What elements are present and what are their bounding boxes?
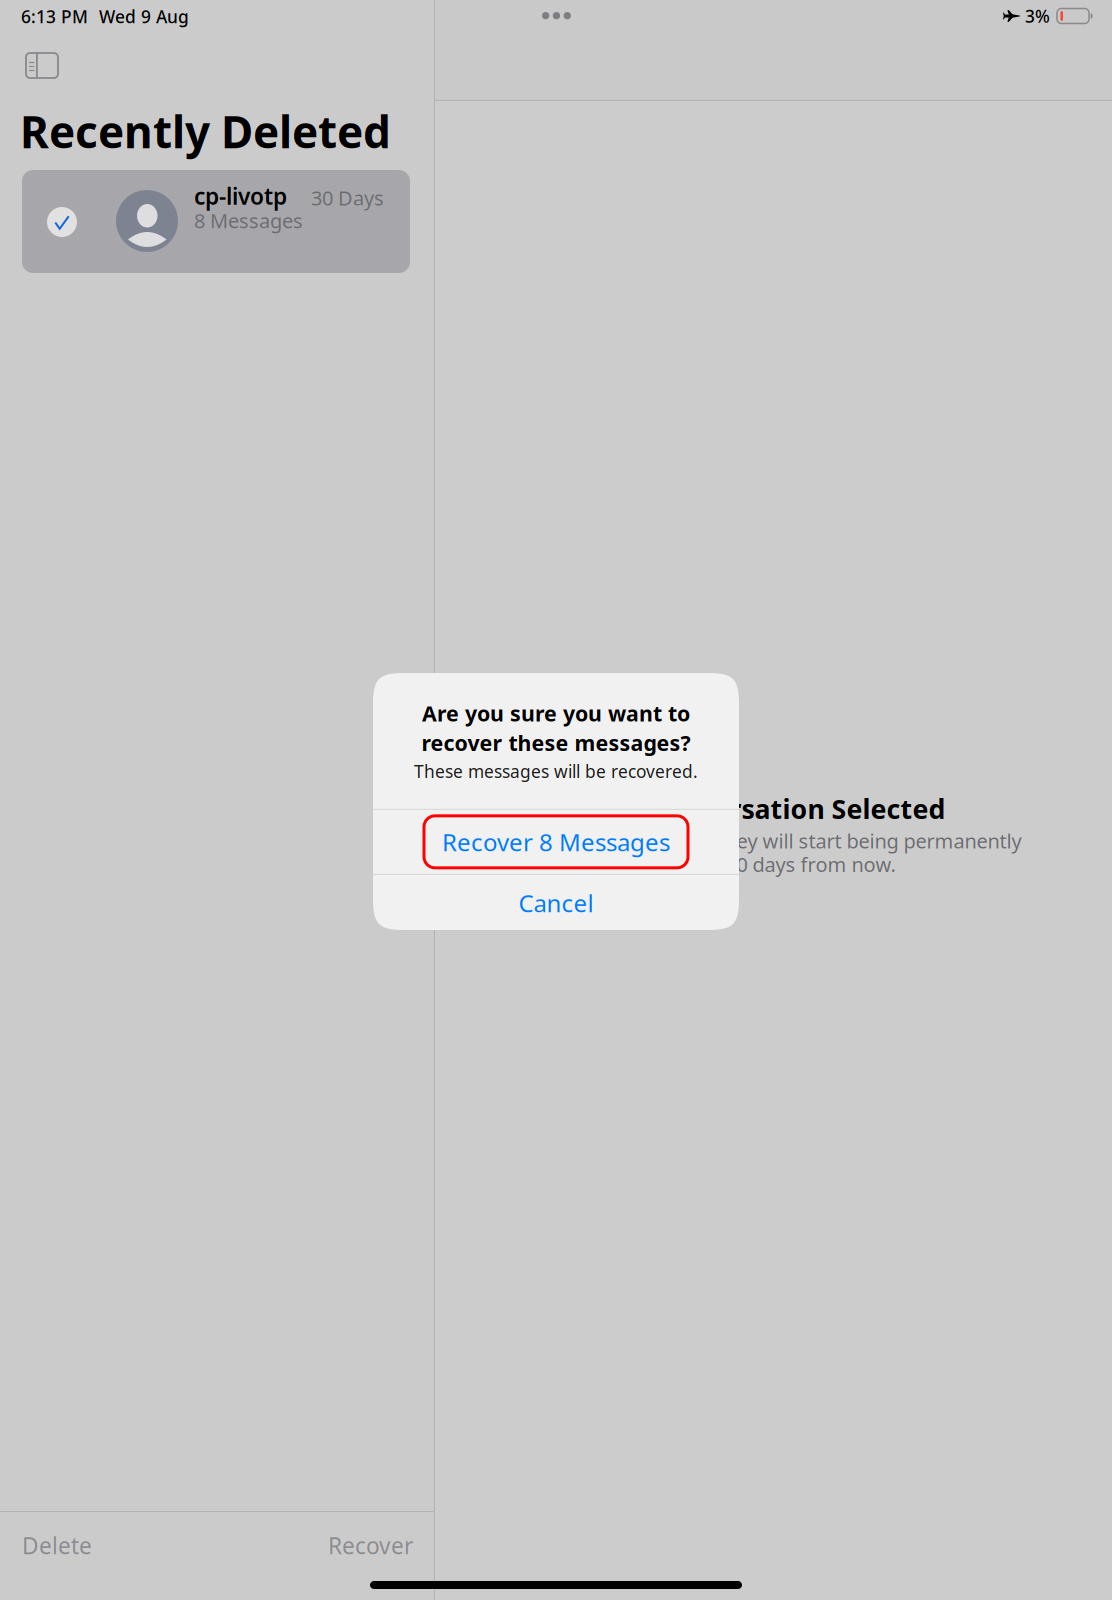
staticText: No Conversation Selected (601, 791, 945, 826)
staticText: Recover 8 Messages (442, 826, 670, 858)
staticText: Cancel (518, 887, 593, 919)
staticText: Are you sure you want to (422, 699, 690, 727)
staticText: cp-livotp (194, 181, 287, 211)
button[interactable]: Hide Sidebar (19, 46, 65, 85)
staticText: If you recover them, they will start bei… (525, 827, 1021, 854)
staticText: 6:13 PM (21, 5, 88, 28)
staticText: These messages will be recovered. (414, 760, 698, 783)
staticText: 8 Messages (194, 207, 303, 234)
staticText: Recently Deleted (20, 102, 391, 160)
button[interactable]: Recover 8 Messages (373, 810, 739, 874)
button[interactable]: Delete (0, 1513, 132, 1577)
button[interactable]: Recover (303, 1513, 434, 1577)
staticText: Wed 9 Aug (99, 5, 189, 28)
staticText: deleted 30 days from now. (651, 851, 895, 878)
staticText: Recover (328, 1530, 413, 1560)
staticText: 3% (1025, 4, 1050, 27)
staticText: Delete (22, 1530, 92, 1560)
staticText: recover these messages? (421, 728, 690, 757)
staticText: 30 Days (311, 184, 384, 211)
button[interactable]: Cancel (373, 875, 739, 931)
button[interactable]: cp-livotp (22, 170, 410, 273)
